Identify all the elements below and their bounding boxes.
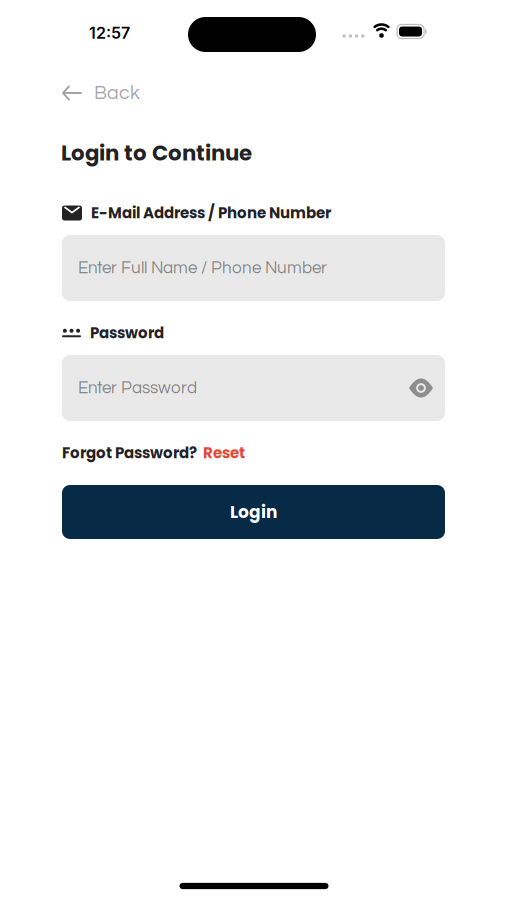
- staticText: Forgot Password?: [62, 442, 197, 463]
- staticText: Password: [90, 322, 164, 343]
- staticText: Back: [94, 83, 140, 103]
- staticText: Reset: [203, 442, 245, 463]
- button[interactable]: Login: [62, 485, 445, 539]
- staticText: Enter Password: [78, 379, 197, 397]
- button[interactable]: Back: [62, 78, 182, 108]
- staticText: Login: [230, 500, 277, 524]
- button[interactable]: Password: [62, 355, 445, 421]
- button[interactable]: Reset: [203, 442, 245, 463]
- button[interactable]: E-Mail Address / Phone Number: [62, 235, 445, 301]
- staticText: Enter Full Name / Phone Number: [78, 259, 327, 277]
- staticText: Login to Continue: [61, 138, 252, 168]
- button[interactable]: Show password: [409, 379, 433, 396]
- staticText: E-Mail Address / Phone Number: [91, 202, 331, 223]
- staticText: 12:57: [89, 23, 130, 43]
